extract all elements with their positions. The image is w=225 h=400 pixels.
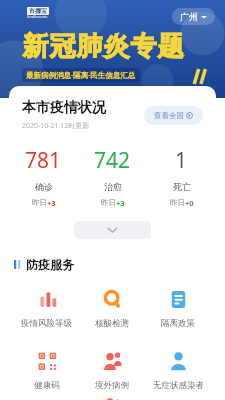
staticText: 健康码 [34, 380, 60, 391]
staticText: 本市疫情状况 [22, 99, 106, 117]
staticText: 查看全国 [154, 111, 184, 120]
staticText: 昨日 [32, 198, 47, 207]
button[interactable]: 境外病例 [79, 347, 145, 393]
staticText: 确诊 [35, 181, 53, 192]
staticText: 1 [175, 146, 188, 175]
staticText: 死亡 [173, 181, 191, 192]
staticText: +3 [47, 198, 56, 208]
button[interactable]: 无症状感染者 [145, 347, 211, 393]
button[interactable]: 疫情风险等级 [14, 285, 79, 331]
staticText: 防疫服务 [26, 257, 74, 272]
button[interactable]: 查看全国 [144, 106, 203, 125]
staticText: 核酸检测 [95, 318, 129, 329]
staticText: 疫情风险等级 [21, 318, 72, 329]
button[interactable]: 核酸检测 [79, 285, 145, 331]
staticText: 境外病例 [95, 380, 129, 391]
staticText: 新冠肺炎专题 [22, 30, 184, 63]
button[interactable]: 健康码 [14, 347, 79, 393]
staticText: 昨日 [101, 198, 116, 207]
button[interactable]: 展开更多 [74, 221, 151, 239]
staticText: 无症状感染者 [153, 380, 204, 391]
staticText: 最新病例消息·隔离·民生信息汇总 [26, 70, 136, 80]
staticText: +0 [185, 198, 194, 208]
staticText: 781 [25, 146, 62, 175]
staticText: 市挪宝 [29, 7, 47, 15]
staticText: 治愈 [104, 181, 122, 192]
button[interactable]: 广州 [172, 8, 215, 25]
staticText: Bendibao.com [27, 15, 48, 19]
staticText: 742 [94, 146, 131, 175]
staticText: +3 [116, 198, 125, 208]
staticText: 2020-10-21 12时更新 [22, 121, 90, 131]
staticText: 隔离政策 [161, 318, 195, 329]
staticText: 昨日 [170, 198, 185, 207]
staticText: 广州 [180, 11, 198, 22]
button[interactable]: 隔离政策 [145, 285, 211, 331]
